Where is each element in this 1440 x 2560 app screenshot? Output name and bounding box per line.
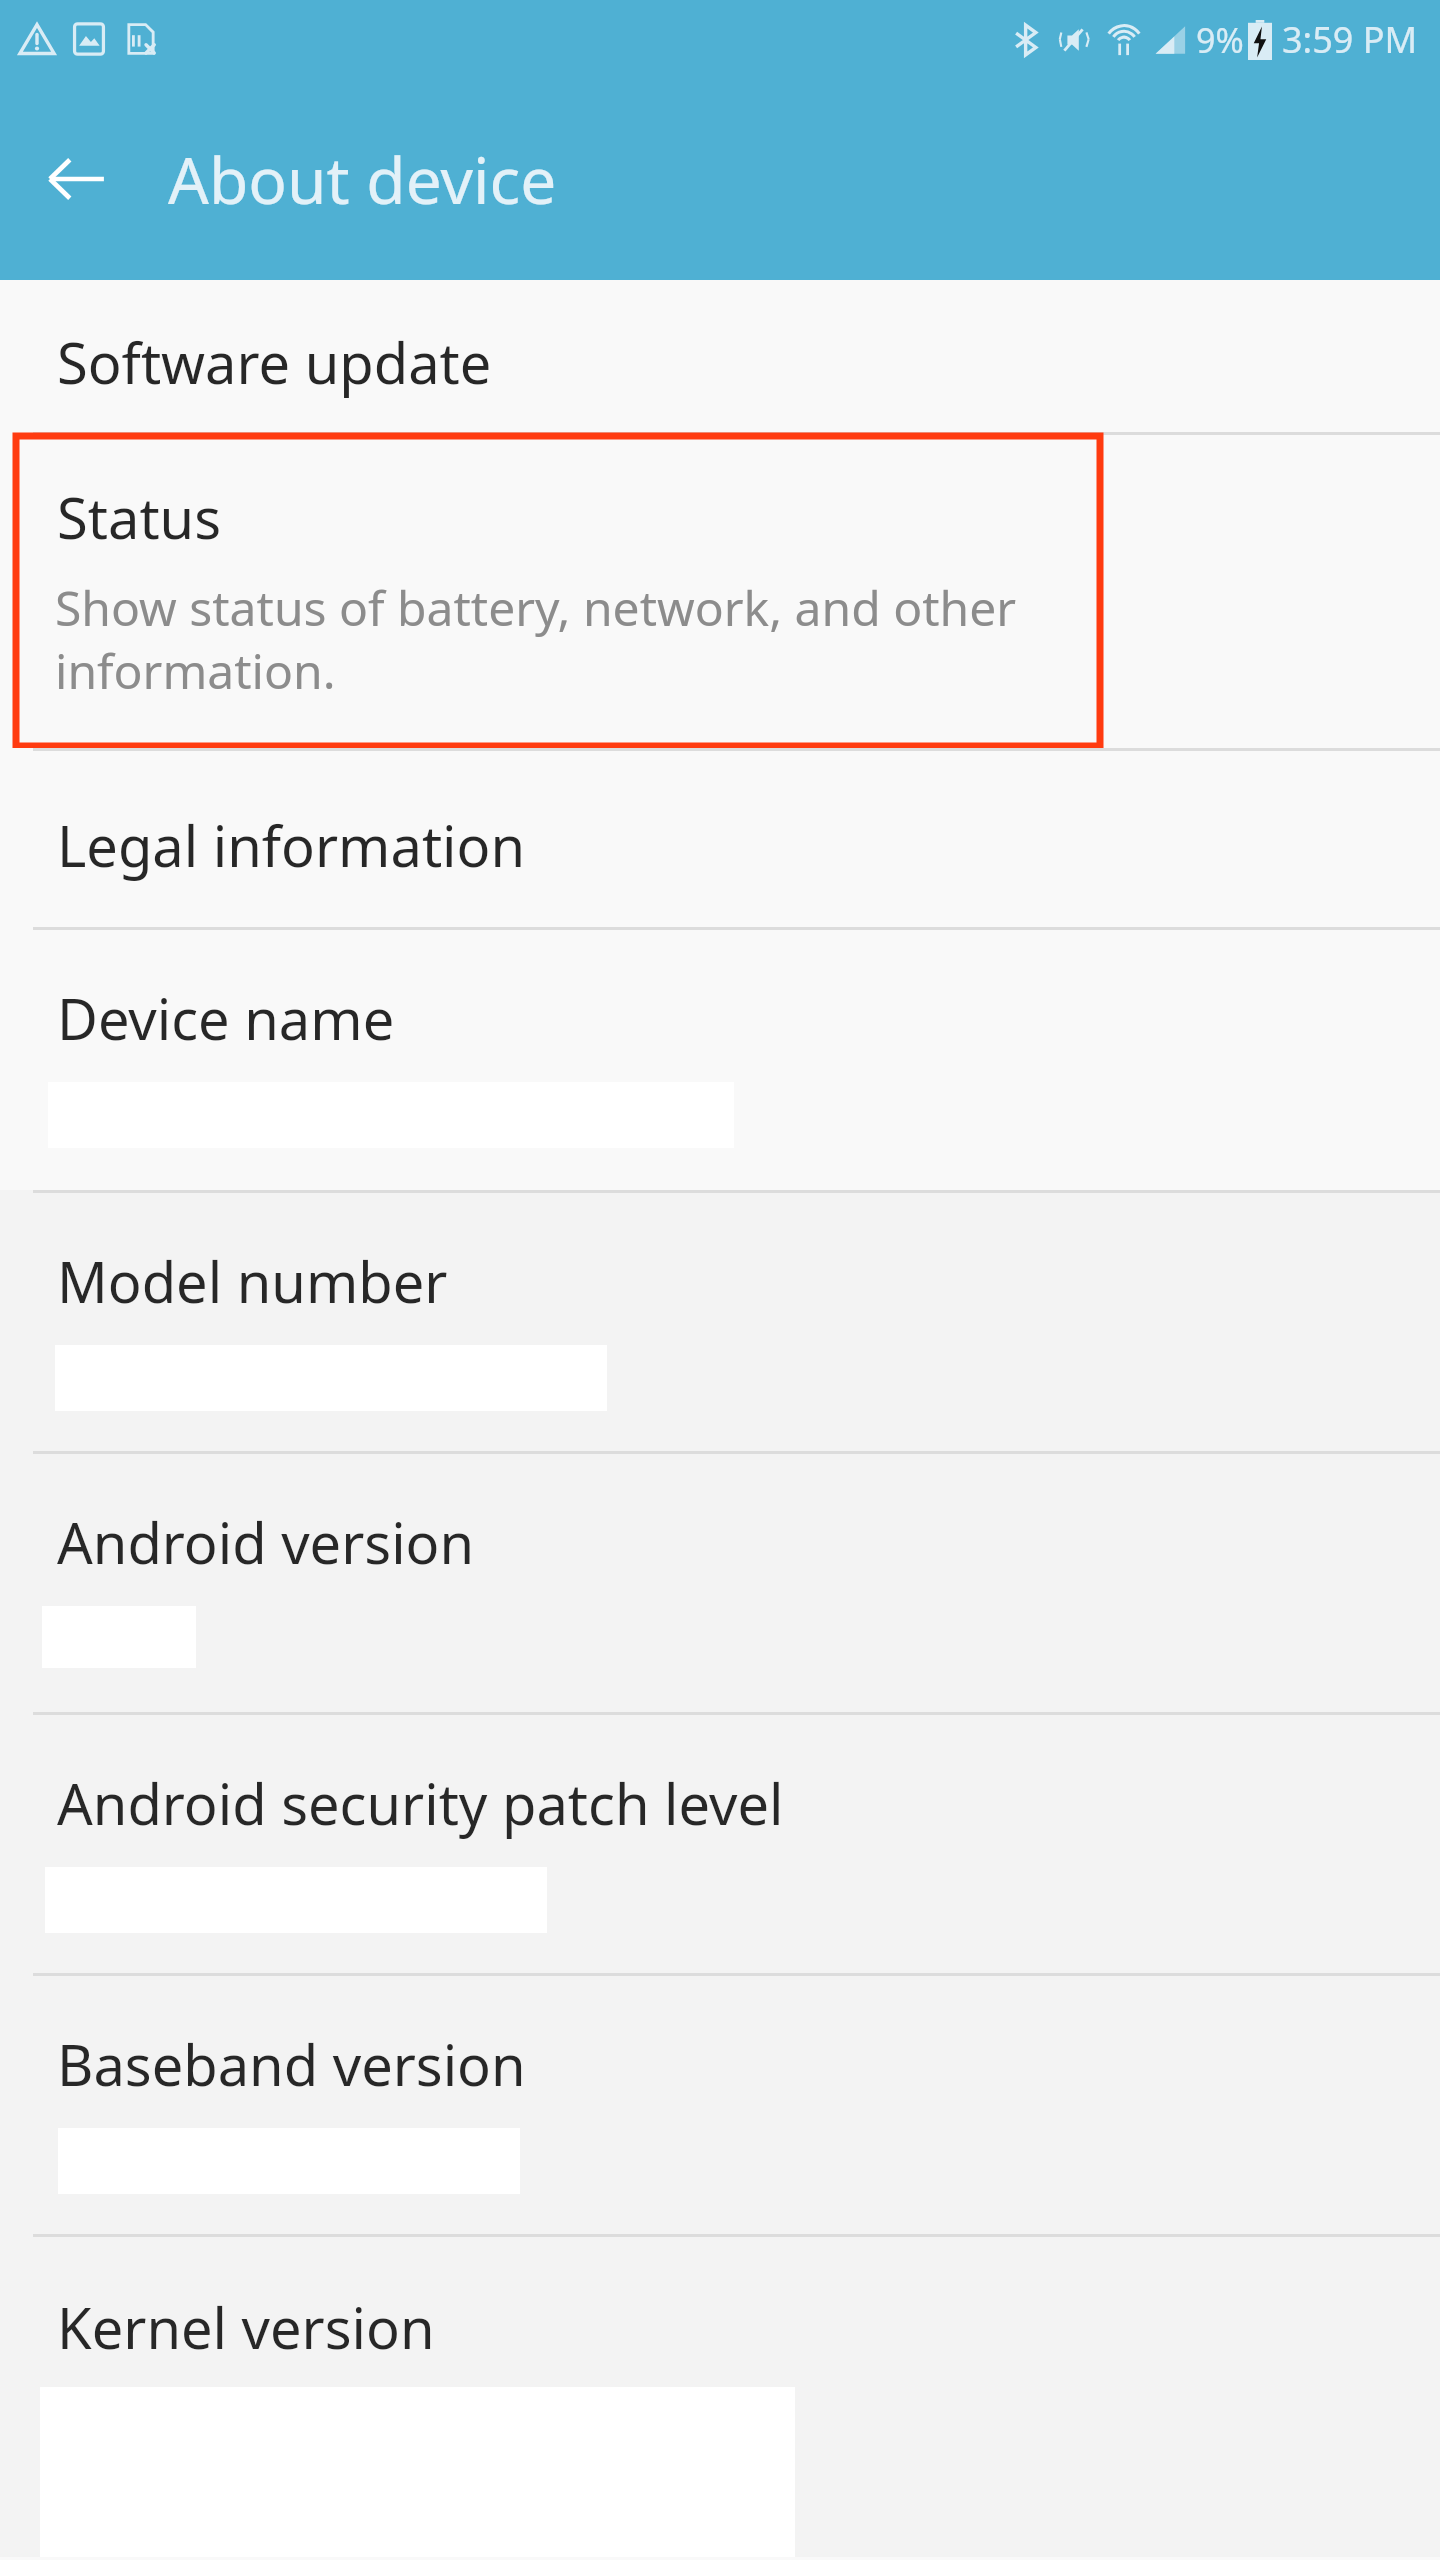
button[interactable]: Legal information <box>0 751 1440 927</box>
button[interactable]: Kernel version <box>0 2237 1440 2557</box>
staticText: Software update <box>57 324 492 400</box>
staticText: Model number <box>57 1243 448 1319</box>
staticText: Baseband version <box>57 2026 526 2102</box>
button[interactable]: Back <box>40 143 112 215</box>
staticText: Kernel version <box>57 2289 435 2365</box>
button[interactable]: Model number <box>0 1193 1440 1451</box>
staticText: 3:59 PM <box>1282 15 1418 64</box>
staticText: About device <box>168 136 557 223</box>
staticText: Android security patch level <box>57 1765 784 1841</box>
button[interactable]: Device name <box>0 930 1440 1190</box>
staticText: Show status of battery, network, and oth… <box>55 575 1017 703</box>
button[interactable]: Status <box>0 435 1440 748</box>
button[interactable]: Android security patch level <box>0 1715 1440 1973</box>
button[interactable]: Baseband version <box>0 1976 1440 2234</box>
staticText: Status <box>57 479 222 555</box>
staticText: Device name <box>57 980 395 1056</box>
button[interactable]: Android version <box>0 1454 1440 1712</box>
button[interactable]: Software update <box>0 280 1440 432</box>
staticText: Legal information <box>57 807 526 883</box>
staticText: Android version <box>57 1504 475 1580</box>
staticText: 9% <box>1196 17 1244 63</box>
